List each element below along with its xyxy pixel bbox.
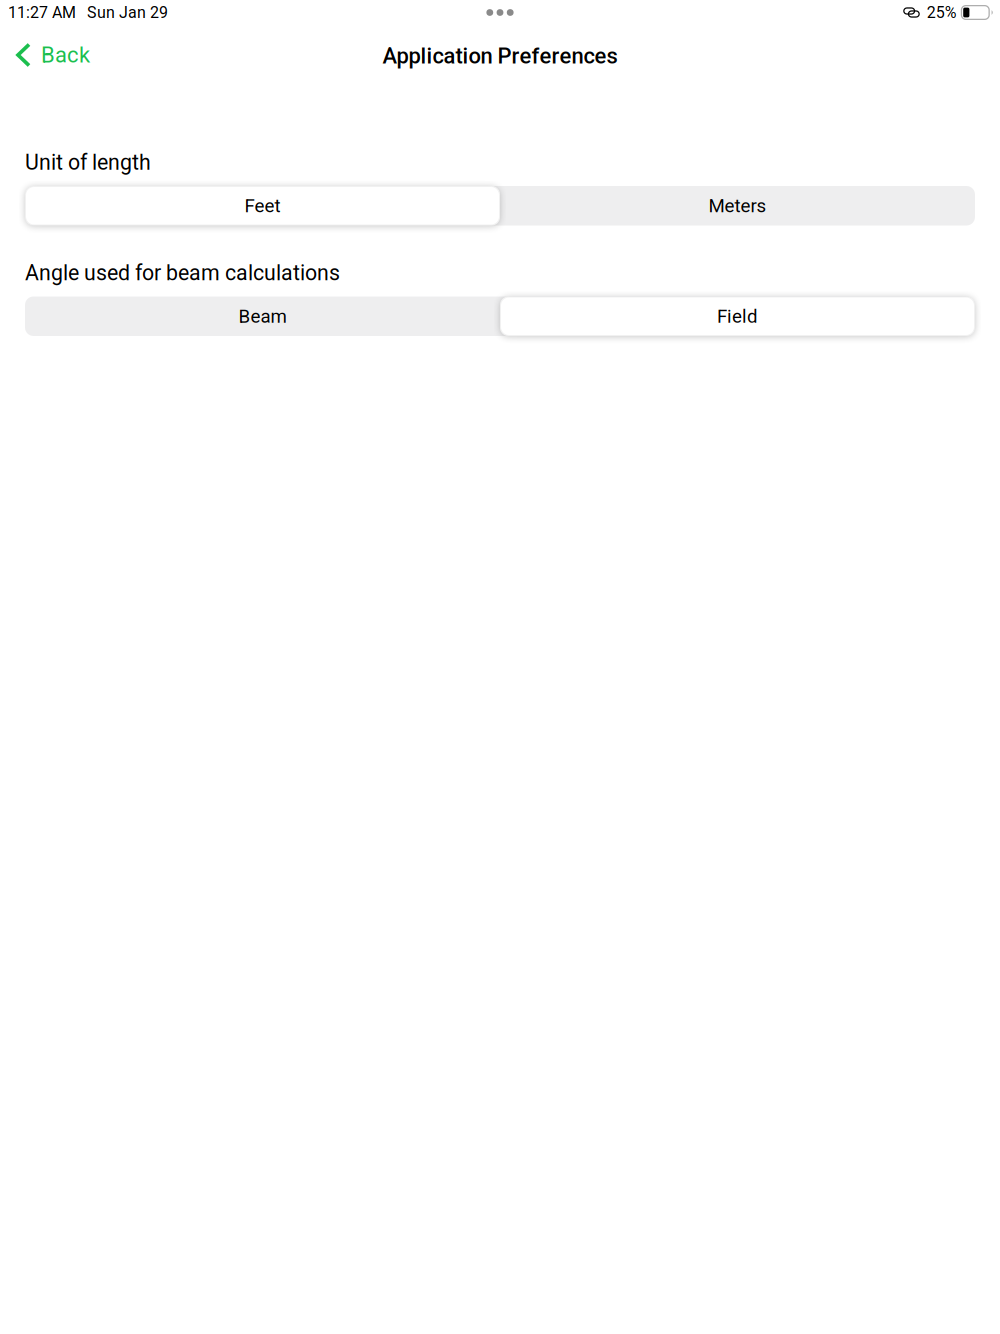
- staticText: Back: [41, 42, 90, 68]
- staticText: Angle used for beam calculations: [25, 260, 340, 285]
- button[interactable]: Meters: [500, 186, 975, 225]
- staticText: Sun Jan 29: [87, 3, 168, 22]
- button[interactable]: Feet: [25, 186, 500, 225]
- button[interactable]: Field: [500, 296, 975, 336]
- staticText: Meters: [708, 195, 766, 217]
- staticText: Feet: [244, 195, 280, 217]
- staticText: Unit of length: [25, 150, 151, 175]
- button[interactable]: Beam: [25, 296, 500, 336]
- staticText: 25%: [927, 3, 957, 22]
- staticText: Field: [717, 305, 758, 327]
- staticText: Beam: [238, 305, 286, 327]
- staticText: 11:27 AM: [8, 3, 76, 22]
- button[interactable]: Back: [0, 35, 102, 75]
- staticText: Application Preferences: [382, 43, 617, 69]
